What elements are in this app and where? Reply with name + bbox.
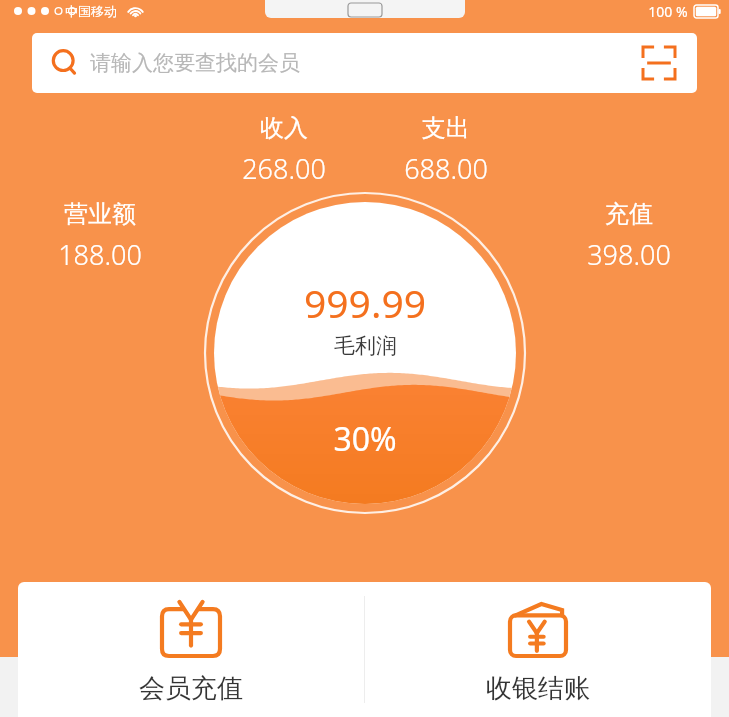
button[interactable]: 请输入您要查找的会员 — [32, 33, 697, 93]
staticText: 收入 — [260, 113, 308, 143]
button[interactable]: 会员充值 — [18, 582, 364, 717]
staticText: 中国移动 — [65, 3, 117, 19]
button[interactable]: 999.99 — [204, 192, 526, 514]
staticText: 398.00 — [587, 236, 671, 273]
button[interactable]: Scan QR code — [639, 43, 679, 83]
staticText: 请输入您要查找的会员 — [90, 50, 300, 76]
button[interactable]: 收银结账 — [365, 582, 711, 717]
staticText: 支出 — [422, 113, 470, 143]
staticText: 收银结账 — [486, 672, 590, 705]
staticText: 999.99 — [304, 276, 426, 329]
staticText: 688.00 — [404, 150, 488, 187]
staticText: 188.00 — [58, 236, 142, 273]
staticText: 30% — [333, 417, 397, 461]
staticText: 会员充值 — [139, 672, 243, 705]
staticText: 毛利润 — [334, 333, 397, 359]
staticText: 充值 — [605, 199, 653, 229]
staticText: 100 % — [648, 2, 688, 21]
staticText: 营业额 — [64, 199, 136, 229]
staticText: 268.00 — [242, 150, 326, 187]
